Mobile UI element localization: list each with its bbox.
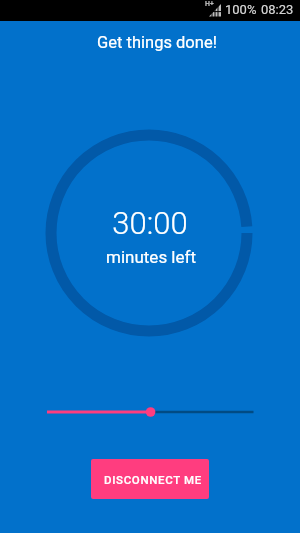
staticText: 08:23 [261,2,294,17]
staticText: 100% [225,2,257,17]
staticText: Get things done! [7,33,300,52]
staticText: H+ [205,0,214,8]
button[interactable]: Timer duration slider [0,396,300,426]
staticText: 30:00 [0,205,300,241]
staticText: DISCONNECT ME [104,473,202,486]
staticText: minutes left [1,247,300,267]
button[interactable]: DISCONNECT ME [91,459,209,499]
